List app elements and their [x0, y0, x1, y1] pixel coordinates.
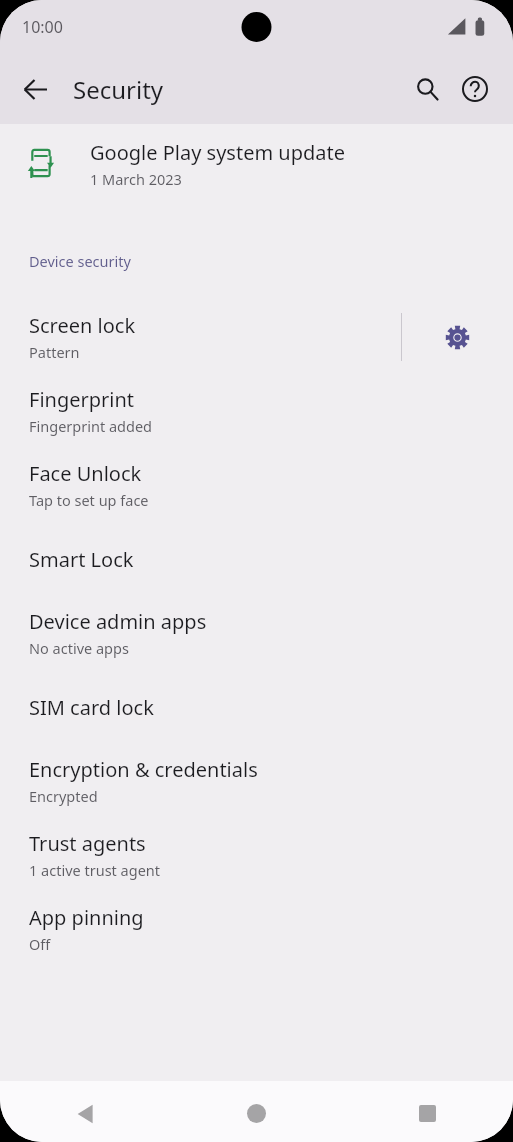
button[interactable]: SIM card lock [0, 670, 513, 744]
staticText: App pinning [29, 904, 144, 931]
button[interactable]: App pinning [0, 892, 513, 966]
staticText: 1 active trust agent [29, 860, 161, 880]
staticText: Fingerprint [29, 386, 135, 413]
staticText: SIM card lock [29, 694, 154, 721]
staticText: Smart Lock [29, 546, 134, 573]
staticText: Encrypted [29, 786, 98, 806]
button[interactable]: Google Play system update [0, 124, 513, 204]
button[interactable]: Trust agents [0, 818, 513, 892]
staticText: 10:00 [22, 16, 63, 38]
button[interactable]: Encryption & credentials [0, 744, 513, 818]
staticText: Pattern [29, 342, 80, 362]
button[interactable]: Back [11, 65, 59, 113]
staticText: Google Play system update [90, 139, 346, 166]
staticText: Off [29, 934, 51, 954]
staticText: Device admin apps [29, 608, 207, 635]
button[interactable]: Help [451, 65, 499, 113]
staticText: Device security [29, 251, 131, 271]
staticText: Fingerprint added [29, 416, 152, 436]
button[interactable]: Smart Lock [0, 522, 513, 596]
button[interactable]: Search [403, 65, 451, 113]
button[interactable]: Face Unlock [0, 448, 513, 522]
staticText: Tap to set up face [29, 490, 149, 510]
staticText: No active apps [29, 638, 129, 658]
staticText: Security [73, 73, 164, 106]
button[interactable]: Screen lock settings [402, 300, 513, 374]
button[interactable]: Fingerprint [0, 374, 513, 448]
button[interactable]: Screen lock [0, 300, 401, 374]
button[interactable]: Home [171, 1081, 342, 1142]
staticText: Screen lock [29, 312, 136, 339]
button[interactable]: Device admin apps [0, 596, 513, 670]
button[interactable]: Recent apps [342, 1081, 513, 1142]
staticText: Encryption & credentials [29, 756, 258, 783]
staticText: Trust agents [29, 830, 146, 857]
staticText: 1 March 2023 [90, 169, 182, 189]
staticText: Face Unlock [29, 460, 142, 487]
button[interactable]: Back [0, 1081, 171, 1142]
